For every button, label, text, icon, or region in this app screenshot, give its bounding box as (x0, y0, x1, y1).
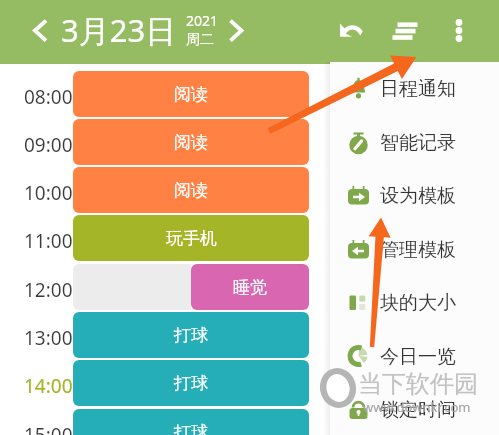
staticText: 08:00 (24, 84, 73, 110)
staticText: 09:00 (24, 132, 73, 158)
staticText: 管理模板 (380, 238, 456, 262)
staticText: 日程通知 (380, 77, 456, 101)
button[interactable]: 块的大小 (330, 276, 499, 329)
staticText: 今日一览 (380, 345, 456, 369)
staticText: 阅读 (174, 84, 208, 105)
staticText: 周二 (186, 31, 214, 49)
button[interactable]: Previous day (25, 15, 57, 47)
staticText: 设为模板 (380, 184, 456, 208)
button[interactable]: 打球 (73, 409, 309, 435)
button[interactable]: 设为模板 (330, 169, 499, 222)
button[interactable]: 日程通知 (330, 62, 499, 115)
staticText: 玩手机 (166, 228, 217, 249)
button[interactable]: 玩手机 (73, 215, 309, 261)
button[interactable]: 智能记录 (330, 116, 499, 169)
button[interactable]: 今日一览 (330, 330, 499, 383)
staticText: 智能记录 (380, 131, 456, 155)
staticText: 13:00 (24, 325, 73, 351)
staticText: 阅读 (174, 132, 208, 153)
staticText: 10:00 (24, 180, 73, 206)
button[interactable]: Undo (334, 16, 368, 50)
staticText: 块的大小 (380, 291, 456, 315)
button[interactable]: 打球 (73, 360, 309, 406)
staticText: 锁定时间 (380, 398, 456, 422)
button[interactable]: 管理模板 (330, 223, 499, 276)
button[interactable]: 睡觉 (191, 264, 309, 310)
staticText: 12:00 (24, 277, 73, 303)
button[interactable]: 阅读 (73, 167, 309, 213)
staticText: 睡觉 (233, 277, 267, 298)
button[interactable]: 阅读 (73, 71, 309, 117)
staticText: 当下软件园 (358, 369, 478, 399)
button[interactable]: Sort (389, 16, 423, 50)
staticText: 14:00 (24, 373, 73, 399)
button[interactable]: More options (443, 16, 477, 50)
staticText: 11:00 (24, 228, 73, 254)
staticText: www.downkr.com (363, 398, 471, 416)
button[interactable]: 打球 (73, 312, 309, 358)
staticText: 3月23日 (61, 9, 177, 51)
staticText: 2021 (186, 11, 219, 30)
staticText: 阅读 (174, 180, 208, 201)
staticText: 打球 (174, 325, 208, 346)
button[interactable]: 阅读 (73, 119, 309, 165)
staticText: 打球 (174, 373, 208, 394)
button[interactable]: Next day (219, 15, 251, 47)
button[interactable]: 锁定时间 (330, 383, 499, 435)
staticText: 15:00 (24, 422, 73, 435)
staticText: 打球 (174, 422, 208, 435)
